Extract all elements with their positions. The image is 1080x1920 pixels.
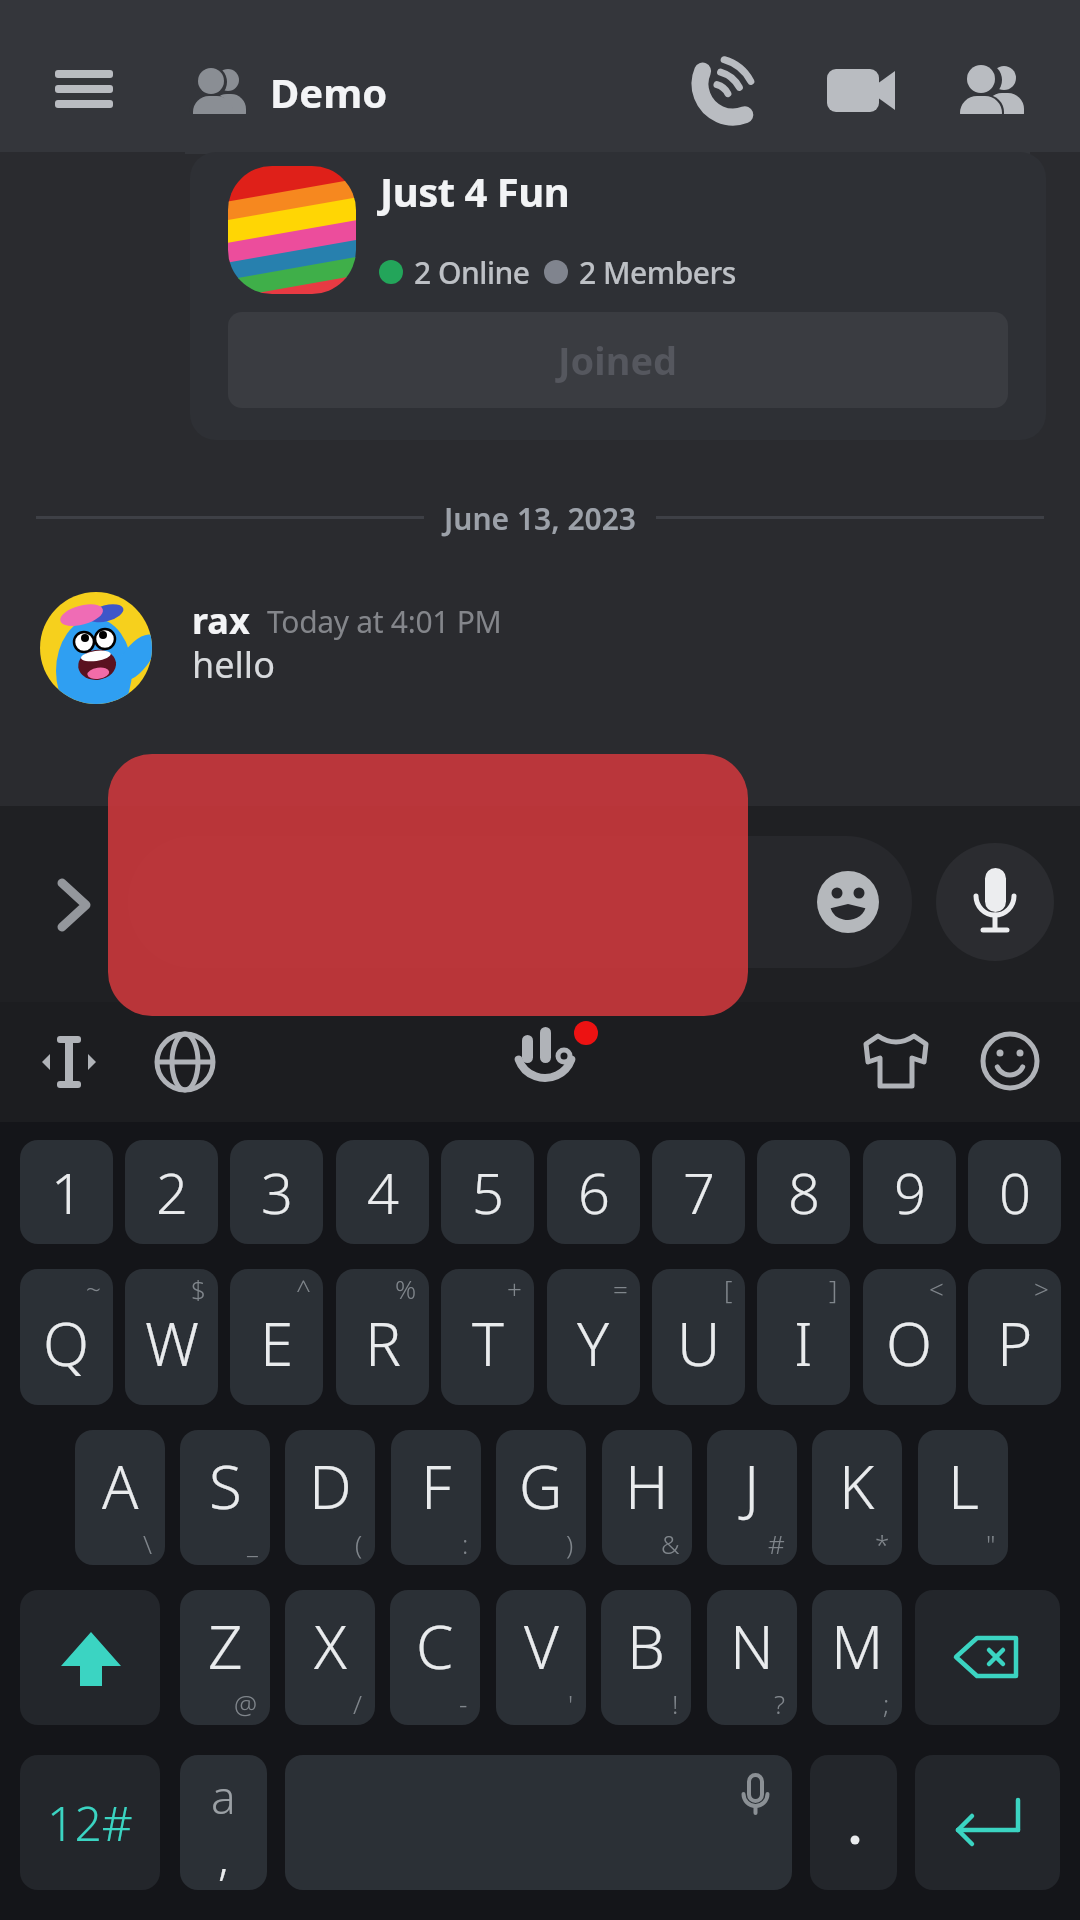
staticText: * bbox=[875, 1526, 890, 1561]
staticText: E bbox=[260, 1302, 294, 1384]
staticText: rax bbox=[192, 596, 250, 645]
staticText: , bbox=[218, 1824, 229, 1889]
staticText: / bbox=[353, 1686, 363, 1721]
staticText: > bbox=[1034, 1271, 1049, 1306]
staticText: T bbox=[472, 1302, 504, 1384]
staticText: 2 Online bbox=[414, 252, 530, 293]
staticText: 1 bbox=[51, 1154, 83, 1230]
staticText: @ bbox=[234, 1686, 258, 1721]
staticText: P bbox=[997, 1302, 1033, 1384]
staticText: a bbox=[211, 1765, 236, 1828]
staticText: $ bbox=[191, 1271, 206, 1306]
staticText: Today at 4:01 PM bbox=[267, 601, 502, 642]
staticText: H bbox=[625, 1445, 669, 1527]
staticText: U bbox=[677, 1302, 721, 1384]
staticText: O bbox=[886, 1302, 933, 1384]
staticText: K bbox=[839, 1445, 875, 1527]
staticText: - bbox=[459, 1686, 468, 1721]
staticText: 6 bbox=[578, 1154, 610, 1230]
staticText: = bbox=[613, 1271, 628, 1306]
staticText: Just 4 Fun bbox=[380, 164, 570, 218]
staticText: " bbox=[986, 1526, 996, 1561]
staticText: ' bbox=[568, 1686, 574, 1721]
staticText: B bbox=[627, 1605, 665, 1687]
staticText: ? bbox=[774, 1686, 785, 1721]
staticText: : bbox=[462, 1526, 469, 1561]
staticText: X bbox=[314, 1605, 347, 1687]
staticText: Demo bbox=[270, 65, 388, 119]
staticText: N bbox=[730, 1605, 774, 1687]
staticText: V bbox=[524, 1605, 559, 1687]
staticText: \ bbox=[143, 1526, 153, 1561]
staticText: M bbox=[831, 1605, 884, 1687]
staticText: I bbox=[794, 1302, 813, 1384]
staticText: % bbox=[395, 1271, 417, 1306]
staticText: R bbox=[365, 1302, 401, 1384]
staticText: 2 bbox=[156, 1154, 188, 1230]
staticText: Y bbox=[577, 1302, 610, 1384]
staticText: D bbox=[309, 1445, 352, 1527]
staticText: C bbox=[416, 1605, 454, 1687]
staticText: ~ bbox=[86, 1271, 101, 1306]
staticText: # bbox=[768, 1526, 785, 1561]
staticText: 8 bbox=[788, 1154, 820, 1230]
staticText: & bbox=[661, 1526, 680, 1561]
staticText: W bbox=[145, 1302, 199, 1384]
staticText: ( bbox=[355, 1526, 363, 1561]
staticText: hello bbox=[192, 640, 275, 689]
staticText: ; bbox=[883, 1686, 890, 1721]
staticText: A bbox=[102, 1445, 139, 1527]
staticText: + bbox=[507, 1271, 522, 1306]
staticText: 9 bbox=[894, 1154, 926, 1230]
staticText: 12# bbox=[47, 1790, 133, 1855]
staticText: _ bbox=[247, 1526, 258, 1561]
staticText: < bbox=[929, 1271, 944, 1306]
staticText: ) bbox=[566, 1526, 574, 1561]
staticText: J bbox=[744, 1445, 760, 1527]
staticText: ] bbox=[829, 1271, 838, 1306]
staticText: 3 bbox=[261, 1154, 293, 1230]
staticText: S bbox=[209, 1445, 242, 1527]
staticText: L bbox=[948, 1445, 979, 1527]
staticText: ! bbox=[672, 1686, 679, 1721]
staticText: 7 bbox=[683, 1154, 715, 1230]
staticText: [ bbox=[724, 1271, 733, 1306]
staticText: Joined bbox=[558, 334, 678, 386]
staticText: 4 bbox=[367, 1154, 399, 1230]
staticText: Q bbox=[43, 1302, 90, 1384]
staticText: ^ bbox=[296, 1271, 311, 1306]
staticText: June 13, 2023 bbox=[444, 498, 637, 539]
staticText: 0 bbox=[999, 1154, 1031, 1230]
staticText: Z bbox=[208, 1605, 243, 1687]
staticText: 2 Members bbox=[579, 252, 736, 293]
staticText: 5 bbox=[472, 1154, 504, 1230]
staticText: F bbox=[421, 1445, 452, 1527]
staticText: G bbox=[519, 1445, 563, 1527]
